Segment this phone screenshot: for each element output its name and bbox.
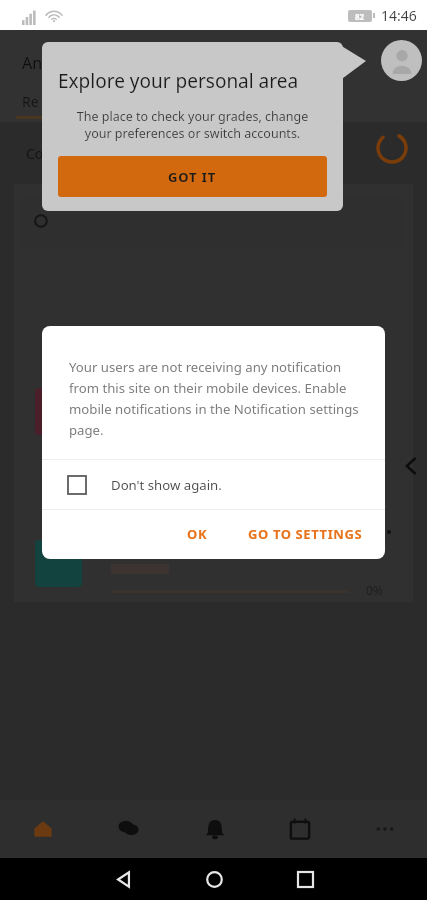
button[interactable]: Recents: [260, 858, 351, 900]
button[interactable]: Back: [77, 858, 169, 900]
button[interactable]: Notifications: [172, 800, 257, 858]
staticText: OK: [187, 525, 208, 543]
staticText: An: [22, 52, 43, 74]
button[interactable]: GOT IT: [58, 156, 327, 197]
button[interactable]: Dashboard: [0, 800, 86, 858]
button[interactable]: OK: [175, 517, 220, 551]
button[interactable]: GO TO SETTINGS: [236, 517, 375, 551]
button[interactable]: Messages: [86, 800, 172, 858]
staticText: The place to check your grades, change y…: [58, 108, 327, 142]
staticText: 0%: [366, 582, 383, 598]
staticText: GO TO SETTINGS: [248, 525, 363, 543]
button[interactable]: Profile: [381, 40, 422, 81]
button[interactable]: Calendar: [257, 800, 342, 858]
staticText: GOT IT: [168, 168, 217, 186]
staticText: Your users are not receiving any notific…: [69, 358, 361, 439]
button[interactable]: Previous: [398, 452, 426, 480]
staticText: Course overview: [26, 144, 135, 163]
staticText: Explore your personal area: [58, 68, 299, 94]
button[interactable]: Don't show again.: [42, 460, 385, 509]
staticText: Re: [22, 92, 39, 111]
button[interactable]: Home: [169, 858, 260, 900]
staticText: 14:46: [381, 6, 417, 25]
staticText: 82: [355, 11, 365, 22]
staticText: Don't show again.: [111, 476, 222, 494]
